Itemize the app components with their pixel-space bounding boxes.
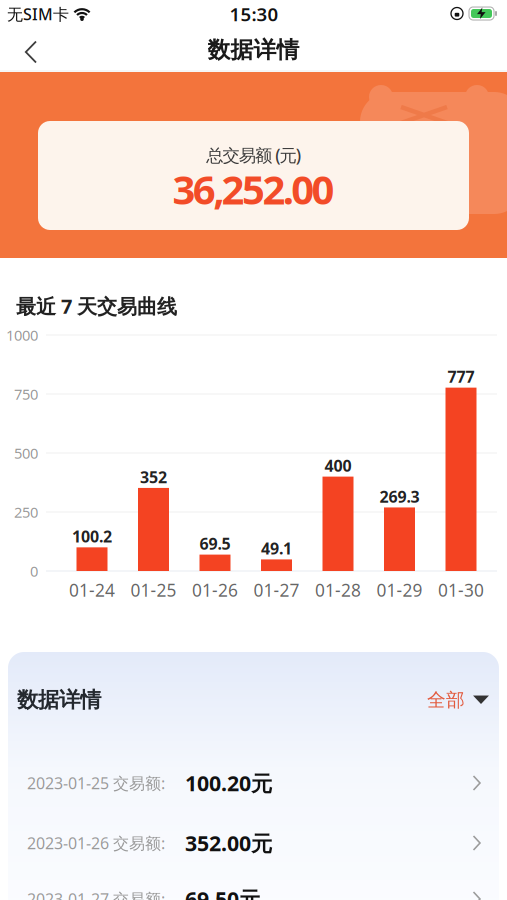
staticText: 269.3 (379, 486, 419, 507)
staticText: 69.5 (199, 533, 230, 554)
staticText: 49.1 (261, 538, 292, 559)
staticText: 100.20元 (185, 769, 272, 797)
staticText: 01-29 (376, 578, 422, 601)
staticText: 全部 (427, 688, 465, 711)
staticText: 100.2 (72, 526, 112, 547)
button[interactable] (15, 31, 47, 72)
staticText: 01-26 (192, 578, 238, 601)
staticText: 777 (447, 366, 474, 387)
button[interactable]: 2023-01-25 交易额: (6, 753, 501, 813)
staticText: 最近 7 天交易曲线 (16, 293, 177, 319)
button[interactable]: 2023-01-26 交易额: (6, 813, 501, 873)
staticText: 69.50元 (185, 885, 260, 900)
staticText: 15:30 (229, 2, 278, 26)
staticText: 01-30 (438, 578, 484, 601)
staticText: 1000 (6, 325, 38, 345)
staticText: 2023-01-26 交易额: (27, 832, 165, 854)
staticText: 352 (140, 466, 167, 487)
staticText: 数据详情 (207, 36, 299, 64)
staticText: 750 (14, 384, 38, 404)
staticText: 352.00元 (185, 829, 272, 857)
staticText: 500 (14, 443, 38, 463)
staticText: 01-28 (315, 578, 361, 601)
button[interactable]: 2023-01-27 交易额: (6, 869, 501, 900)
staticText: 36,252.00 (172, 162, 335, 215)
staticText: 01-27 (253, 578, 299, 601)
button[interactable]: 全部 (427, 688, 489, 711)
staticText: 01-25 (130, 578, 176, 601)
staticText: 无SIM卡 (7, 3, 69, 25)
staticText: 400 (324, 455, 351, 476)
staticText: 数据详情 (17, 687, 101, 713)
staticText: 2023-01-27 交易额: (27, 888, 165, 900)
staticText: 总交易额 (元) (206, 143, 301, 166)
staticText: 250 (14, 502, 38, 522)
staticText: 2023-01-25 交易额: (27, 772, 165, 794)
staticText: 01-24 (69, 578, 115, 601)
staticText: 0 (30, 561, 38, 581)
